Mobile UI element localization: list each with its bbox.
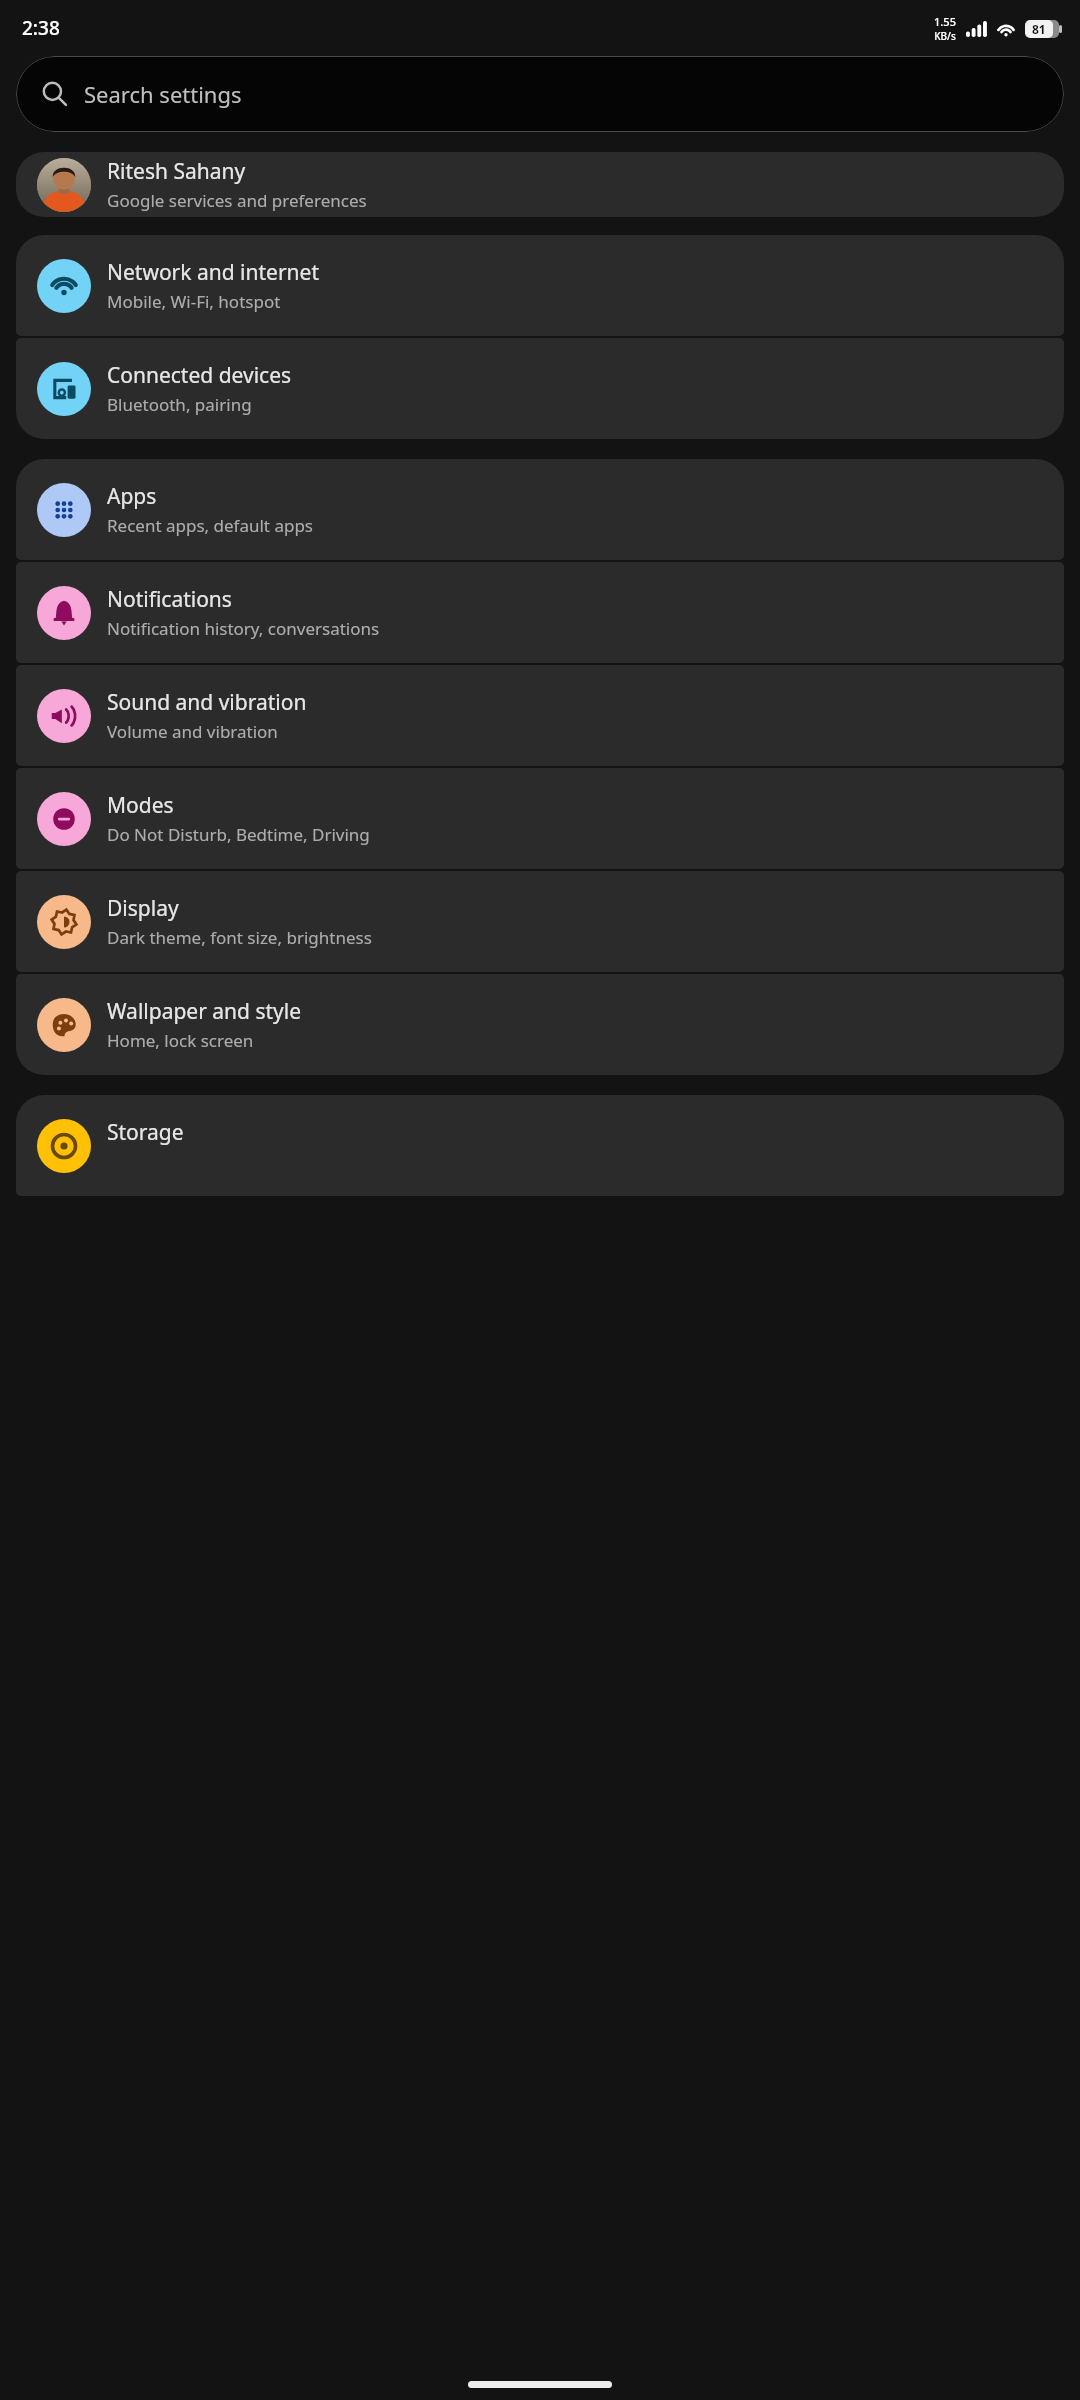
staticText: Wallpaper and style <box>107 997 302 1026</box>
button[interactable]: Display <box>16 871 1064 972</box>
staticText: Storage <box>107 1118 184 1147</box>
button[interactable]: Notifications <box>16 562 1064 663</box>
button[interactable]: Sound and vibration <box>16 665 1064 766</box>
button[interactable]: Wallpaper and style <box>16 974 1064 1075</box>
staticText: 1.55 <box>934 14 956 29</box>
button[interactable]: Modes <box>16 768 1064 869</box>
staticText: 81 <box>1032 21 1046 37</box>
staticText: Display <box>107 894 179 923</box>
button[interactable]: Search settings <box>16 56 1064 132</box>
staticText: Connected devices <box>107 361 292 390</box>
staticText: Apps <box>107 482 157 511</box>
staticText: Google services and preferences <box>107 189 367 212</box>
staticText: Ritesh Sahany <box>107 157 246 186</box>
staticText: Bluetooth, pairing <box>107 393 252 416</box>
button[interactable]: Apps <box>16 459 1064 560</box>
staticText: Sound and vibration <box>107 688 307 717</box>
button[interactable]: Network and internet <box>16 235 1064 336</box>
staticText: Mobile, Wi-Fi, hotspot <box>107 290 281 313</box>
staticText: Search settings <box>84 79 242 109</box>
button[interactable]: Ritesh Sahany <box>16 152 1064 217</box>
button[interactable]: Storage <box>16 1095 1064 1196</box>
button[interactable]: Connected devices <box>16 338 1064 439</box>
staticText: Notification history, conversations <box>107 617 380 640</box>
staticText: 2:38 <box>22 15 60 41</box>
staticText: Do Not Disturb, Bedtime, Driving <box>107 823 370 846</box>
staticText: KB/s <box>934 29 956 43</box>
staticText: Notifications <box>107 585 232 614</box>
staticText: Dark theme, font size, brightness <box>107 926 372 949</box>
staticText: Modes <box>107 791 174 820</box>
staticText: Network and internet <box>107 258 319 287</box>
staticText: Home, lock screen <box>107 1029 254 1052</box>
staticText: Volume and vibration <box>107 720 278 743</box>
staticText: Recent apps, default apps <box>107 514 314 537</box>
